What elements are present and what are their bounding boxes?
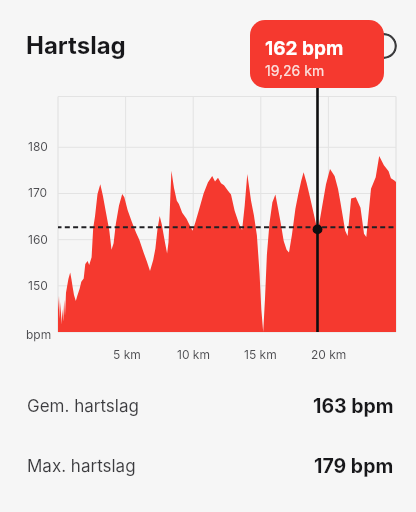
staticText: 179 bpm <box>314 454 394 478</box>
staticText: Max. hartslag <box>27 456 136 477</box>
staticText: 180 <box>28 139 48 154</box>
button[interactable]: 162 bpm <box>250 20 384 88</box>
button[interactable]: Options <box>371 33 397 59</box>
button[interactable]: Max. hartslag <box>0 445 416 487</box>
staticText: 150 <box>28 278 48 293</box>
staticText: bpm <box>26 327 52 342</box>
staticText: Hartslag <box>26 31 126 60</box>
staticText: 170 <box>28 185 48 200</box>
staticText: 163 bpm <box>313 394 394 418</box>
staticText: 19,26 km <box>265 62 325 79</box>
staticText: 10 km <box>177 347 210 362</box>
staticText: 162 bpm <box>265 37 344 60</box>
staticText: 20 km <box>311 347 347 362</box>
staticText: 15 km <box>244 347 277 362</box>
staticText: 160 <box>28 232 48 247</box>
staticText: Gem. hartslag <box>27 396 139 417</box>
staticText: 5 km <box>113 347 141 362</box>
button[interactable]: Gem. hartslag <box>0 385 416 427</box>
